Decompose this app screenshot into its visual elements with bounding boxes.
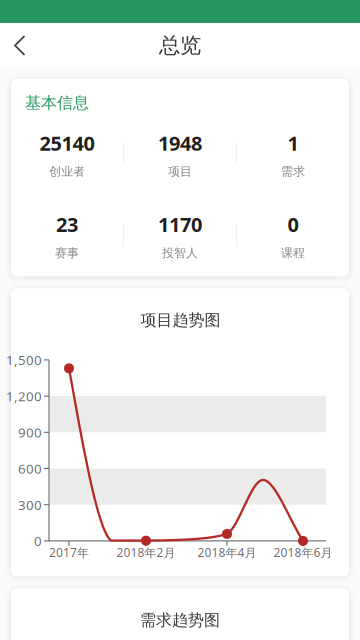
staticText: 投智人 [162,245,198,260]
staticText: 300 [18,496,42,513]
staticText: 创业者 [49,164,85,179]
staticText: 2018年6月 [273,544,332,560]
button[interactable]: Back [0,25,27,65]
staticText: 0 [34,532,42,550]
staticText: 25140 [39,130,94,156]
staticText: 0 [287,211,298,238]
staticText: 1,500 [6,351,42,369]
staticText: 总览 [159,32,201,59]
staticText: 2018年2月 [116,544,175,560]
staticText: 23 [56,211,78,238]
staticText: 需求趋势图 [140,610,220,630]
staticText: 项目趋势图 [140,310,220,330]
staticText: 2018年4月 [197,544,256,560]
staticText: 900 [18,423,42,441]
staticText: 1 [287,130,298,156]
staticText: 课程 [281,245,305,260]
staticText: 基本信息 [25,93,89,113]
staticText: 1,200 [6,387,42,405]
staticText: 1948 [158,130,202,156]
staticText: 2017年 [49,544,89,560]
staticText: 1170 [158,211,202,238]
staticText: 需求 [281,164,305,179]
staticText: 赛事 [55,245,79,260]
staticText: 600 [18,460,42,477]
staticText: 项目 [168,164,192,179]
